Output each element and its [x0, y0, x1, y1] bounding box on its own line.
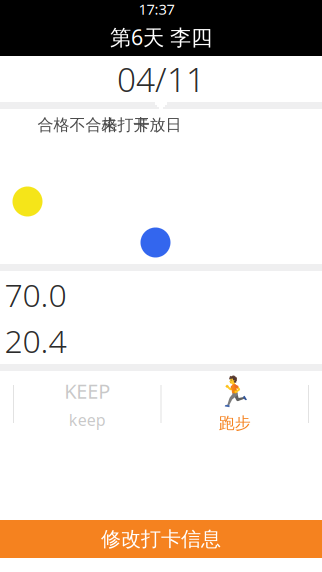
staticText: 跑步 — [219, 413, 251, 433]
button[interactable]: KEEP — [14, 371, 160, 437]
staticText: 04/11 — [117, 57, 205, 101]
staticText: KEEP — [64, 378, 110, 404]
staticText: keep — [69, 409, 106, 430]
staticText: 70.0 — [4, 273, 66, 316]
button[interactable]: 修改打卡信息 — [0, 520, 322, 558]
staticText: 不合格 — [69, 115, 117, 135]
staticText: 修改打卡信息 — [101, 527, 221, 551]
staticText: 20.4 — [4, 319, 66, 362]
button[interactable]: 🏃 — [161, 371, 308, 437]
staticText: 17:37 — [138, 0, 174, 19]
staticText: 未打卡 — [101, 115, 149, 135]
staticText: 第6天 李四 — [110, 23, 212, 51]
staticText: 开放日 — [133, 115, 181, 135]
staticText: 合格 — [37, 115, 69, 135]
staticText: 🏃 — [216, 375, 253, 408]
